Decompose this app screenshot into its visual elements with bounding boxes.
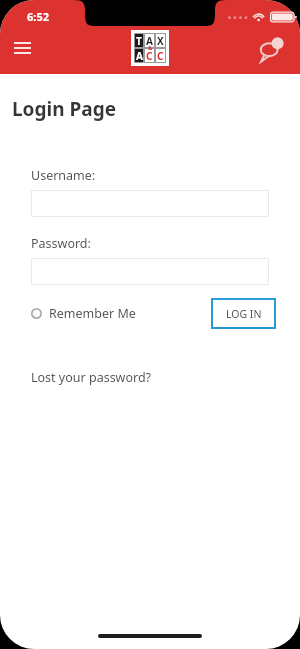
button[interactable]: Lost your password? (31, 369, 152, 386)
staticText: Password: (31, 235, 91, 252)
staticText: Remember Me (49, 305, 136, 322)
staticText: & (148, 44, 153, 52)
staticText: A (136, 49, 143, 63)
staticText: X (157, 34, 164, 48)
button[interactable]: Open navigation menu (8, 34, 36, 62)
staticText: LOG IN (226, 307, 262, 321)
staticText: 6:52 (27, 9, 49, 24)
button[interactable] (31, 190, 269, 217)
staticText: C (157, 49, 164, 63)
staticText: Login Page (12, 96, 117, 122)
staticText: A (146, 34, 153, 48)
button[interactable]: Messages, 0 unread (256, 32, 288, 64)
staticText: Username: (31, 167, 96, 184)
staticText: C (146, 49, 153, 63)
button[interactable] (31, 258, 269, 285)
button[interactable]: LOG IN (211, 298, 276, 329)
staticText: Lost your password? (31, 369, 152, 386)
button[interactable]: T (131, 30, 169, 66)
button[interactable]: Remember Me (31, 301, 136, 326)
staticText: T (136, 34, 142, 48)
